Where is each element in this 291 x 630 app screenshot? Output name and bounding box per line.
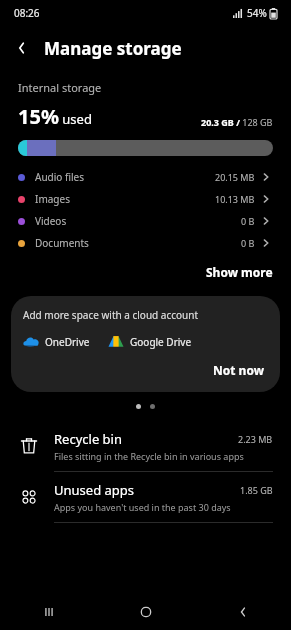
button[interactable]: Show more <box>0 262 291 282</box>
staticText: 54% <box>247 6 267 20</box>
staticText: Recycle bin <box>54 430 122 448</box>
staticText: 0 B <box>241 215 255 227</box>
button[interactable]: Images <box>0 188 291 210</box>
staticText: 10.13 MB <box>215 193 255 205</box>
button[interactable]: Not now <box>209 360 268 380</box>
staticText: Files sitting in the Recycle bin in vari… <box>54 450 244 462</box>
button[interactable]: Home <box>97 594 194 630</box>
staticText: Videos <box>35 214 67 228</box>
staticText: Show more <box>206 264 273 280</box>
staticText: 08:26 <box>14 6 40 20</box>
staticText: Manage storage <box>44 37 182 60</box>
button[interactable]: Unused apps <box>0 472 291 523</box>
staticText: 2.23 MB <box>238 433 273 445</box>
staticText: 15% used <box>18 103 92 130</box>
button[interactable]: Audio files <box>0 166 291 188</box>
button[interactable]: Google Drive <box>108 334 192 350</box>
staticText: Unused apps <box>54 481 135 499</box>
button[interactable]: Recycle bin <box>0 421 291 472</box>
staticText: Add more space with a cloud account <box>23 308 199 322</box>
button[interactable]: Documents <box>0 232 291 254</box>
staticText: Apps you haven't used in the past 30 day… <box>54 501 231 513</box>
staticText: OneDrive <box>45 335 90 349</box>
staticText: 20.3 GB / 128 GB <box>201 116 273 128</box>
button[interactable]: Back <box>0 26 44 70</box>
staticText: 0 B <box>241 237 255 249</box>
staticText: 20.15 MB <box>215 171 255 183</box>
button[interactable]: Back <box>194 594 291 630</box>
staticText: Not now <box>213 362 264 378</box>
button[interactable]: Videos <box>0 210 291 232</box>
staticText: Audio files <box>35 170 84 184</box>
staticText: Images <box>35 192 70 206</box>
button[interactable]: OneDrive <box>23 334 90 350</box>
staticText: 1.85 GB <box>240 484 273 496</box>
button[interactable]: Recent apps <box>0 594 97 630</box>
staticText: Google Drive <box>130 335 192 349</box>
staticText: Internal storage <box>18 80 102 95</box>
staticText: Documents <box>35 236 89 250</box>
